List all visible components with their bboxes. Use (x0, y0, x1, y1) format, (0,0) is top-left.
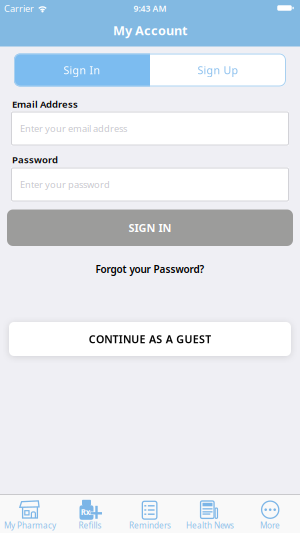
staticText: Enter your password (20, 178, 110, 191)
button[interactable]: Enter your email address (11, 111, 289, 145)
staticText: Rx (81, 507, 91, 518)
staticText: 9:43 AM (133, 3, 166, 14)
staticText: Email Address (12, 97, 78, 111)
staticText: Reminders (129, 520, 171, 531)
staticText: My Account (113, 22, 187, 39)
button[interactable]: More (240, 495, 300, 533)
staticText: Sign In (63, 63, 100, 77)
staticText: Forgot your Password? (95, 262, 204, 276)
staticText: More (260, 520, 280, 531)
staticText: Health News (186, 520, 234, 531)
button[interactable]: Reminders (120, 495, 180, 533)
button[interactable]: Sign Up (150, 53, 286, 86)
button[interactable]: Rx (60, 495, 120, 533)
staticText: My Pharmacy (4, 520, 56, 531)
staticText: Sign Up (197, 63, 238, 77)
button[interactable]: My Pharmacy (0, 495, 60, 533)
button[interactable]: Enter your password (11, 167, 289, 201)
staticText: Password (12, 153, 58, 166)
staticText: CONTINUE AS A GUEST (89, 332, 211, 346)
staticText: SIGN IN (128, 220, 171, 235)
button[interactable]: Health News (180, 495, 240, 533)
button[interactable]: CONTINUE AS A GUEST (9, 322, 291, 356)
button[interactable]: Forgot your Password? (95, 263, 204, 274)
staticText: Refills (78, 520, 101, 531)
staticText: Carrier (4, 2, 34, 15)
staticText: Enter your email address (20, 122, 127, 135)
button[interactable]: SIGN IN (7, 209, 293, 246)
button[interactable]: Sign In (14, 53, 150, 86)
